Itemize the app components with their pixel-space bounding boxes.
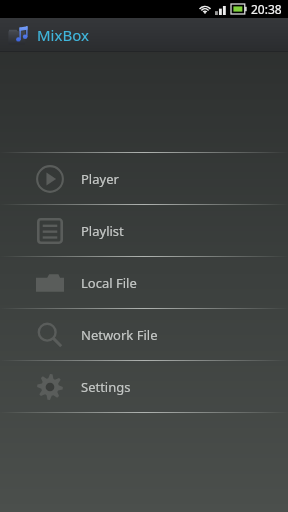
staticText: Settings	[81, 378, 131, 396]
staticText: Network File	[81, 326, 158, 344]
staticText: 20:38	[251, 1, 282, 17]
button[interactable]: Settings	[0, 361, 288, 412]
button[interactable]: Network File	[0, 309, 288, 360]
staticText: Playlist	[81, 222, 124, 240]
button[interactable]: Local File	[0, 257, 288, 308]
staticText: Player	[81, 170, 119, 188]
button[interactable]: Player	[0, 153, 288, 204]
button[interactable]: MixBox	[0, 18, 288, 52]
button[interactable]: Playlist	[0, 205, 288, 256]
staticText: MixBox	[37, 25, 89, 45]
staticText: Local File	[81, 274, 137, 292]
